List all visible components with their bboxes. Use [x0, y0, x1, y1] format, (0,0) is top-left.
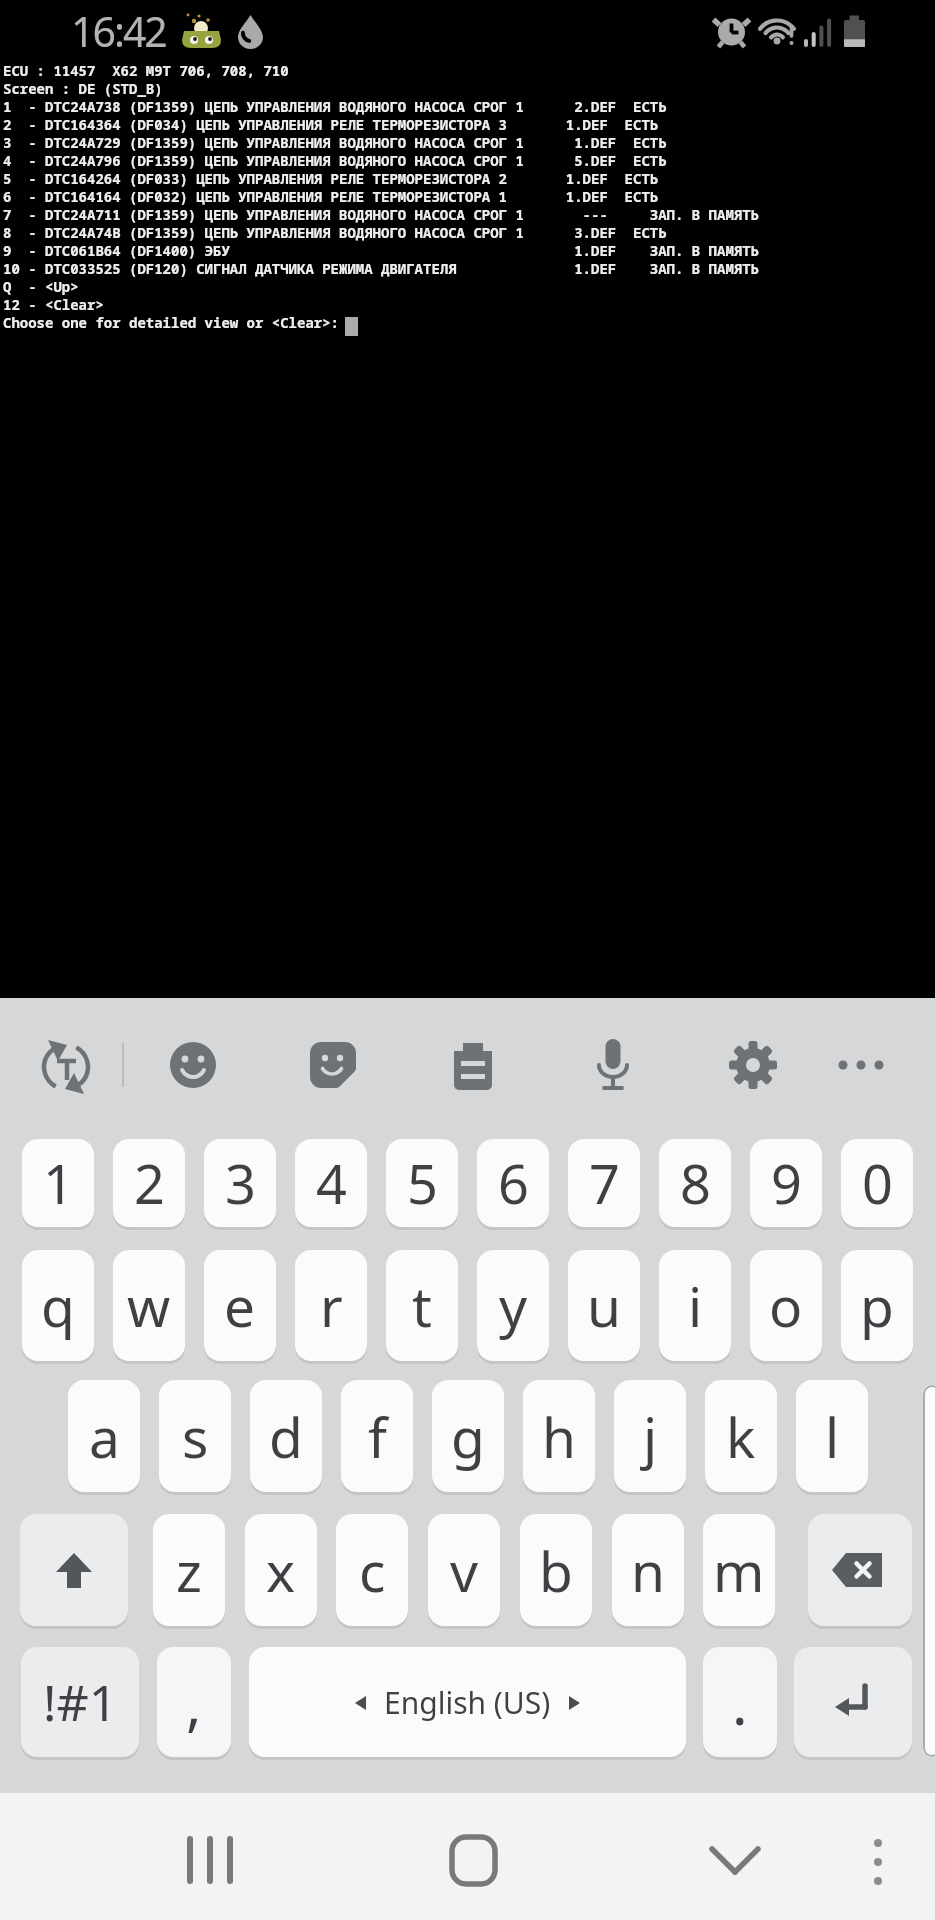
staticText: o [769, 1268, 803, 1343]
staticText: w [127, 1268, 171, 1343]
button[interactable]: s [159, 1380, 231, 1492]
staticText: l [825, 1399, 840, 1474]
button[interactable]: !#1 [21, 1647, 139, 1757]
staticText: h [542, 1399, 576, 1474]
button[interactable] [303, 1035, 363, 1095]
button[interactable] [175, 1825, 245, 1895]
staticText: . [732, 1663, 748, 1742]
button[interactable]: p [841, 1250, 913, 1361]
button[interactable]: 4 [295, 1139, 367, 1227]
staticText: t [412, 1268, 432, 1343]
staticText: ECU : 11457 X62 M9T 706, 708, 710 Screen… [3, 61, 759, 332]
staticText: 5 [407, 1146, 438, 1220]
button[interactable]: , [157, 1647, 231, 1757]
staticText: g [451, 1399, 485, 1474]
button[interactable] [163, 1035, 223, 1095]
button[interactable]: y [477, 1250, 549, 1361]
staticText: v [450, 1533, 478, 1608]
button[interactable]: 9 [750, 1139, 822, 1227]
staticText: f [368, 1399, 387, 1474]
staticText: , [186, 1663, 202, 1742]
button[interactable]: h [523, 1380, 595, 1492]
button[interactable]: a [68, 1380, 140, 1492]
staticText: 7 [589, 1146, 620, 1220]
button[interactable]: 0 [841, 1139, 913, 1227]
button[interactable]: 1 [22, 1139, 94, 1227]
button[interactable] [794, 1647, 912, 1757]
button[interactable]: x [245, 1514, 317, 1626]
staticText: m [713, 1533, 765, 1608]
button[interactable]: b [520, 1514, 592, 1626]
staticText: e [224, 1268, 256, 1343]
staticText: 3 [225, 1146, 256, 1220]
button[interactable]: u [568, 1250, 640, 1361]
button[interactable]: 6 [477, 1139, 549, 1227]
staticText: 6 [498, 1146, 529, 1220]
staticText: u [587, 1268, 621, 1343]
button[interactable]: 7 [568, 1139, 640, 1227]
button[interactable]: r [295, 1250, 367, 1361]
button[interactable]: 5 [386, 1139, 458, 1227]
button[interactable] [583, 1035, 643, 1095]
staticText: 4 [316, 1146, 347, 1220]
button[interactable]: k [705, 1380, 777, 1492]
button[interactable] [700, 1825, 770, 1895]
button[interactable] [443, 1035, 503, 1095]
staticText: !#1 [43, 1668, 118, 1736]
button[interactable]: m [703, 1514, 775, 1626]
staticText: 0 [862, 1146, 893, 1220]
button[interactable] [20, 1514, 128, 1626]
staticText: a [89, 1399, 120, 1474]
button[interactable]: c [336, 1514, 408, 1626]
staticText: English (US) [384, 1682, 551, 1723]
staticText: i [688, 1268, 703, 1343]
button[interactable]: 3 [204, 1139, 276, 1227]
staticText: p [860, 1268, 894, 1343]
button[interactable]: f [341, 1380, 413, 1492]
staticText: r [320, 1268, 343, 1343]
button[interactable]: l [796, 1380, 868, 1492]
button[interactable] [831, 1035, 891, 1095]
staticText: q [41, 1268, 75, 1343]
button[interactable]: j [614, 1380, 686, 1492]
staticText: y [499, 1268, 528, 1343]
button[interactable]: z [153, 1514, 225, 1626]
button[interactable]: q [22, 1250, 94, 1361]
button[interactable]: n [612, 1514, 684, 1626]
button[interactable]: g [432, 1380, 504, 1492]
staticText: x [266, 1533, 296, 1608]
staticText: s [182, 1399, 209, 1474]
staticText: 8 [680, 1146, 711, 1220]
staticText: k [726, 1399, 756, 1474]
staticText: b [539, 1533, 573, 1608]
button[interactable]: . [703, 1647, 777, 1757]
button[interactable] [808, 1514, 912, 1626]
staticText: 16:42 [71, 3, 166, 59]
button[interactable]: i [659, 1250, 731, 1361]
button[interactable]: d [250, 1380, 322, 1492]
button[interactable]: 2 [113, 1139, 185, 1227]
staticText: 1 [43, 1146, 74, 1220]
staticText: j [643, 1399, 658, 1474]
button[interactable]: 8 [659, 1139, 731, 1227]
button[interactable] [723, 1035, 783, 1095]
button[interactable] [438, 1825, 508, 1895]
staticText: c [359, 1533, 386, 1608]
staticText: 2 [134, 1146, 165, 1220]
button[interactable]: e [204, 1250, 276, 1361]
staticText: n [631, 1533, 665, 1608]
button[interactable]: w [113, 1250, 185, 1361]
button[interactable]: t [386, 1250, 458, 1361]
button[interactable]: English (US) [249, 1647, 686, 1757]
staticText: 9 [771, 1146, 802, 1220]
staticText: z [176, 1533, 202, 1608]
button[interactable] [36, 1036, 96, 1096]
button[interactable]: v [428, 1514, 500, 1626]
button[interactable] [858, 1825, 898, 1895]
staticText: d [269, 1399, 303, 1474]
button[interactable]: o [750, 1250, 822, 1361]
